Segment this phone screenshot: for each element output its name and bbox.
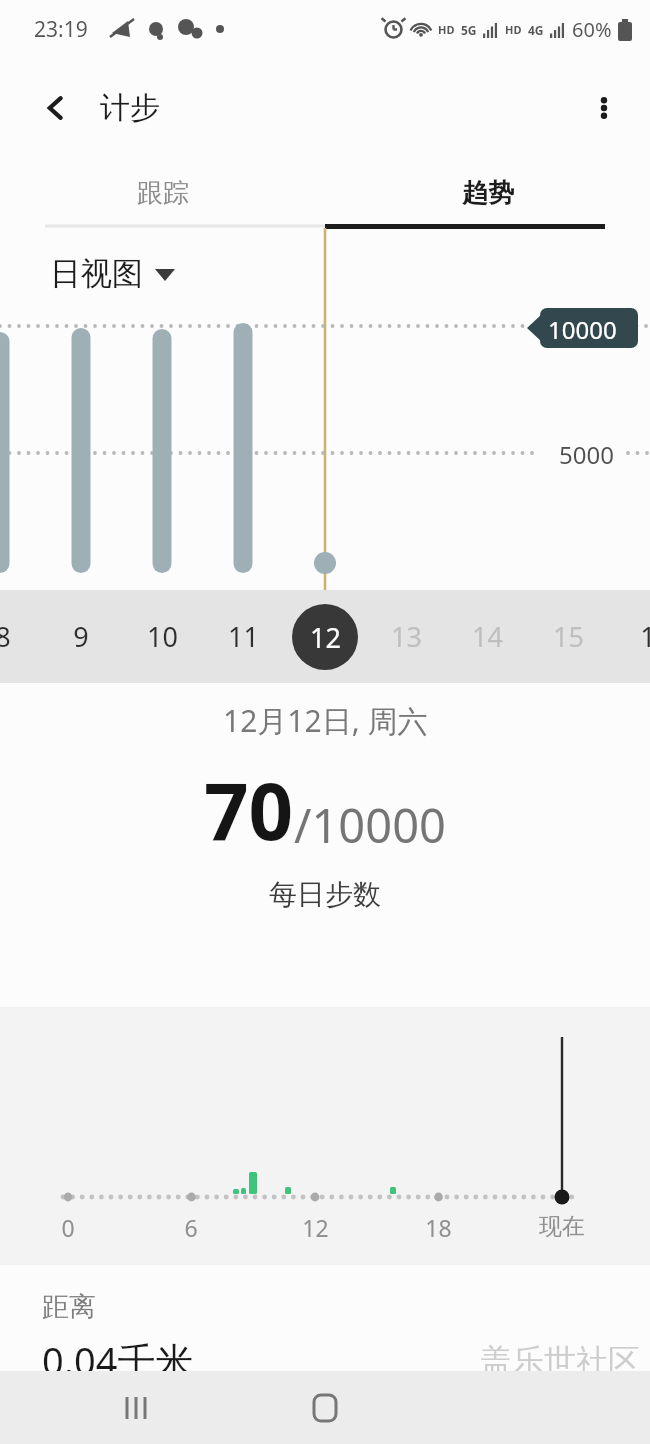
button[interactable]: 9 [51, 590, 111, 683]
staticText: 14 [472, 618, 503, 655]
staticText: 12 [310, 619, 341, 656]
staticText: 23:19 [34, 15, 88, 44]
staticText: 10000 [548, 313, 617, 346]
button[interactable]: 13 [376, 590, 436, 683]
staticText: /10000 [294, 793, 446, 857]
staticText: HD [505, 22, 522, 37]
button[interactable]: Back [28, 80, 84, 136]
button[interactable]: 12 [292, 604, 358, 670]
staticText: 4G [528, 22, 544, 38]
staticText: 0.04千米 [42, 1334, 194, 1386]
staticText: HD [438, 22, 455, 37]
button[interactable]: 趋势 [325, 158, 650, 228]
button[interactable]: 10 [132, 590, 192, 683]
staticText: 18 [425, 1212, 452, 1243]
staticText: 11 [228, 618, 259, 655]
staticText: 计步 [100, 89, 160, 127]
staticText: 60% [572, 16, 612, 43]
staticText: 0 [61, 1212, 75, 1243]
staticText: 13 [391, 618, 422, 655]
button[interactable]: 跟踪 [0, 158, 325, 228]
staticText: 15 [553, 618, 584, 655]
button[interactable]: More options [576, 80, 632, 136]
staticText: 70 [204, 757, 294, 863]
staticText: 5000 [559, 438, 614, 471]
staticText: 12 [302, 1212, 329, 1243]
staticText: 12月12日, 周六 [223, 700, 428, 741]
staticText: 5G [461, 22, 477, 38]
staticText: 1 [640, 618, 650, 655]
staticText: 每日步数 [269, 877, 381, 912]
button[interactable]: 日视图 [44, 248, 181, 299]
staticText: 现在 [539, 1212, 585, 1241]
button[interactable]: 11 [213, 590, 273, 683]
button[interactable]: Recents [97, 1371, 177, 1444]
staticText: 盖乐世社区 [480, 1341, 640, 1381]
staticText: 6 [184, 1212, 198, 1243]
staticText: 9 [73, 618, 89, 655]
button[interactable]: 8 [0, 590, 33, 683]
button[interactable]: 15 [538, 590, 598, 683]
button[interactable]: Home [285, 1371, 365, 1444]
button[interactable]: 1 [618, 590, 650, 683]
staticText: 日视图 [50, 254, 143, 293]
staticText: 距离 [42, 1290, 96, 1324]
button[interactable]: 14 [457, 590, 517, 683]
staticText: 10 [147, 618, 178, 655]
staticText: 8 [0, 618, 11, 655]
staticText: 跟踪 [137, 177, 189, 210]
staticText: 趋势 [462, 177, 514, 210]
